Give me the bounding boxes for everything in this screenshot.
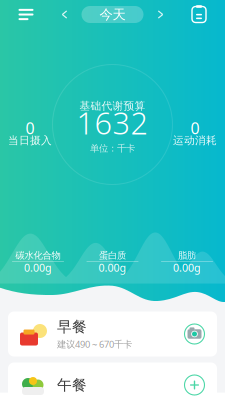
staticText: 脂肪 bbox=[178, 250, 196, 261]
staticText: 建议490 ~ 670千卡 bbox=[57, 338, 132, 350]
staticText: 基础代谢预算 bbox=[79, 99, 145, 113]
button[interactable]: 午餐 bbox=[8, 362, 217, 400]
staticText: 碳水化合物 bbox=[15, 250, 60, 261]
staticText: 0.00g bbox=[24, 260, 52, 275]
button[interactable]: Previous day bbox=[55, 5, 73, 23]
staticText: 0.00g bbox=[173, 260, 201, 275]
staticText: 早餐 bbox=[57, 318, 87, 336]
staticText: 1632 bbox=[76, 102, 148, 143]
button[interactable]: Notes bbox=[183, 0, 215, 30]
staticText: 单位：千卡 bbox=[90, 143, 135, 154]
button[interactable]: Next day bbox=[151, 5, 169, 23]
staticText: 当日摄入 bbox=[8, 134, 52, 147]
staticText: 午餐 bbox=[57, 376, 87, 394]
button[interactable]: Menu bbox=[10, 0, 42, 30]
staticText: 0 bbox=[190, 117, 199, 139]
button[interactable]: 早餐 bbox=[8, 311, 217, 356]
staticText: 0 bbox=[25, 117, 34, 139]
staticText: 蛋白质 bbox=[99, 250, 126, 261]
staticText: 今天 bbox=[99, 6, 125, 23]
staticText: 0.00g bbox=[98, 260, 126, 275]
staticText: 运动消耗 bbox=[173, 134, 217, 147]
button[interactable]: 今天 bbox=[81, 6, 143, 23]
